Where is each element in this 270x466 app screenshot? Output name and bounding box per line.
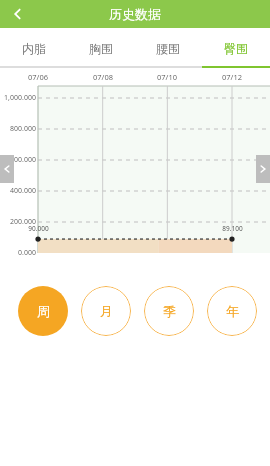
staticText: 800.000 [10, 124, 36, 134]
staticText: 89.100 [222, 224, 243, 233]
staticText: 月 [100, 303, 113, 319]
button[interactable]: Back [0, 0, 36, 28]
button[interactable]: 臀围 [202, 28, 270, 68]
staticText: 0.000 [18, 248, 36, 258]
staticText: 腰围 [156, 41, 180, 56]
button[interactable]: 周 [18, 286, 68, 336]
staticText: 07/06 [28, 72, 48, 82]
button[interactable]: 内脂 [0, 28, 67, 68]
button[interactable]: 季 [144, 286, 194, 336]
staticText: 200.000 [10, 217, 36, 227]
staticText: 历史数据 [109, 6, 161, 22]
button[interactable]: 月 [81, 286, 131, 336]
button[interactable]: Next [256, 155, 270, 183]
staticText: 胸围 [89, 41, 113, 56]
staticText: 年 [226, 303, 239, 319]
button[interactable]: 胸围 [67, 28, 134, 68]
staticText: 季 [163, 303, 176, 319]
staticText: 07/12 [222, 72, 242, 82]
staticText: 周 [37, 303, 50, 319]
staticText: 07/08 [93, 72, 113, 82]
staticText: 1,000.000 [4, 93, 36, 103]
staticText: 400.000 [10, 186, 36, 196]
button[interactable]: Previous [0, 155, 14, 183]
staticText: 内脂 [22, 41, 46, 56]
staticText: 90.000 [28, 224, 49, 233]
button[interactable]: 年 [207, 286, 257, 336]
staticText: 07/10 [157, 72, 177, 82]
button[interactable]: 腰围 [134, 28, 202, 68]
staticText: 600.000 [10, 155, 36, 165]
staticText: 臀围 [224, 41, 248, 56]
